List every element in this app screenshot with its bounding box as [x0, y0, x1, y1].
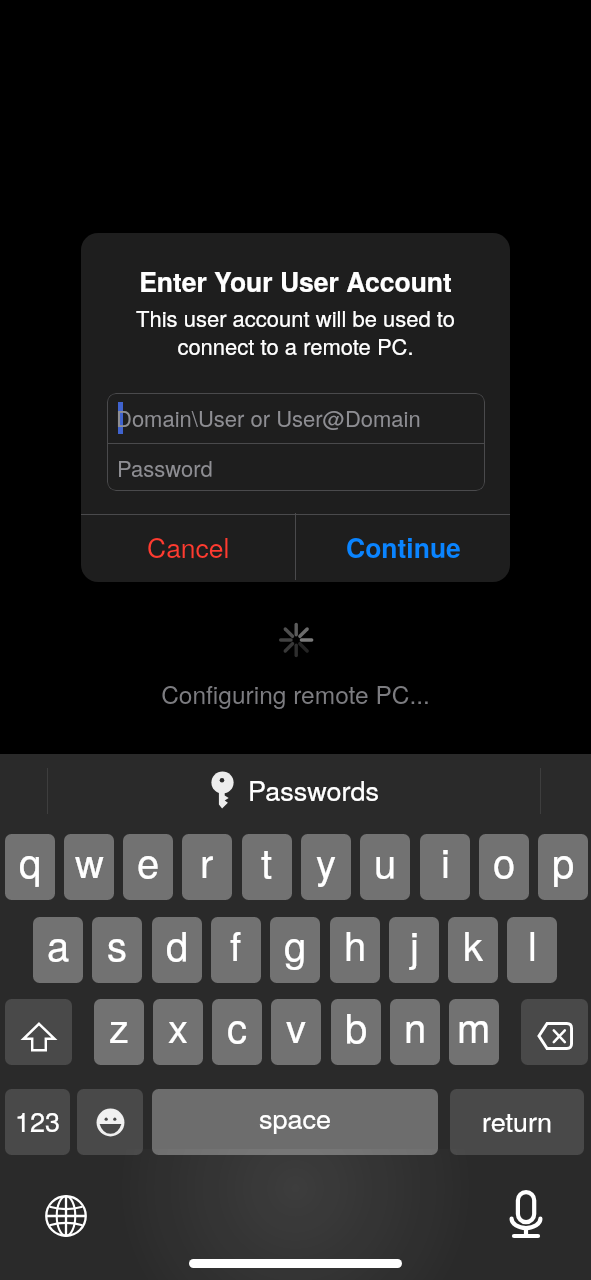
button[interactable]: Dictate [502, 1190, 550, 1238]
staticText: c [227, 999, 247, 1054]
staticText: o [493, 834, 516, 889]
staticText: f [230, 917, 242, 972]
button[interactable]: Backspace [521, 999, 588, 1065]
button[interactable]: y [301, 834, 351, 900]
staticText: q [19, 834, 42, 889]
staticText: k [463, 917, 483, 972]
button[interactable]: c [212, 999, 262, 1065]
staticText: u [374, 834, 397, 889]
staticText: p [552, 834, 575, 889]
staticText: Continue [346, 528, 461, 566]
staticText: e [137, 834, 160, 889]
button[interactable]: b [331, 999, 381, 1065]
staticText: d [166, 917, 189, 972]
button[interactable]: 123 [5, 1089, 70, 1155]
button[interactable]: p [538, 834, 588, 900]
button[interactable]: s [92, 917, 142, 983]
staticText: t [261, 834, 273, 889]
staticText: b [345, 999, 368, 1054]
button[interactable]: Domain\User or User@Domain [107, 393, 485, 443]
button[interactable]: Emoji [77, 1089, 143, 1155]
button[interactable]: u [360, 834, 410, 900]
button[interactable]: Passwords [48, 754, 540, 814]
staticText: m [457, 999, 491, 1054]
staticText: Passwords [248, 770, 379, 809]
staticText: a [47, 917, 70, 972]
staticText: r [200, 834, 214, 889]
button[interactable]: k [448, 917, 498, 983]
button[interactable]: o [479, 834, 529, 900]
button[interactable]: Cancel [81, 513, 295, 580]
button[interactable]: l [507, 917, 557, 983]
staticText: h [344, 917, 367, 972]
button[interactable]: e [123, 834, 173, 900]
staticText: return [482, 1101, 552, 1140]
staticText: Enter Your User Account [81, 262, 510, 300]
button[interactable]: r [182, 834, 232, 900]
button[interactable]: g [270, 917, 320, 983]
staticText: j [410, 917, 419, 972]
staticText: z [109, 999, 129, 1054]
button[interactable]: z [94, 999, 144, 1065]
button[interactable]: h [330, 917, 380, 983]
button[interactable]: v [271, 999, 321, 1065]
staticText: i [441, 834, 450, 889]
button[interactable]: Password [107, 444, 485, 491]
button[interactable]: return [450, 1089, 584, 1155]
button[interactable]: i [420, 834, 470, 900]
button[interactable]: q [5, 834, 55, 900]
staticText: Cancel [147, 528, 230, 566]
button[interactable]: t [242, 834, 292, 900]
staticText: g [284, 917, 307, 972]
button[interactable]: j [389, 917, 439, 983]
button[interactable]: n [390, 999, 440, 1065]
button[interactable]: x [153, 999, 203, 1065]
staticText: v [286, 999, 306, 1054]
button[interactable]: d [152, 917, 202, 983]
staticText: Configuring remote PC... [0, 676, 591, 711]
button[interactable]: m [449, 999, 499, 1065]
button[interactable]: f [211, 917, 261, 983]
staticText: Domain\User or User@Domain [116, 402, 421, 434]
button[interactable]: Switch keyboard [42, 1192, 90, 1240]
button[interactable]: space [152, 1089, 438, 1155]
staticText: w [75, 834, 104, 889]
button[interactable]: a [33, 917, 83, 983]
staticText: 123 [15, 1101, 61, 1140]
staticText: This user account will be used to connec… [81, 302, 510, 362]
staticText: n [404, 999, 427, 1054]
button[interactable]: Shift [5, 999, 72, 1065]
staticText: Password [117, 452, 213, 484]
staticText: s [107, 917, 127, 972]
staticText: y [316, 834, 336, 889]
staticText: x [168, 999, 188, 1054]
staticText: space [259, 1098, 332, 1137]
staticText: l [528, 917, 537, 972]
button[interactable]: Continue [296, 513, 510, 580]
button[interactable]: w [64, 834, 114, 900]
